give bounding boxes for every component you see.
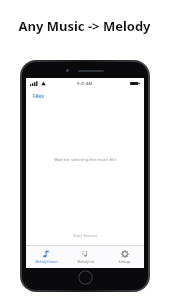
staticText: Files: [33, 93, 44, 100]
staticText: Melody List: [77, 260, 95, 264]
button[interactable]: Melody List: [66, 246, 105, 268]
button[interactable]: Melody Extract: [26, 246, 66, 268]
staticText: Melody Extract: [35, 260, 58, 264]
staticText: 9:41 AM: [77, 81, 93, 86]
staticText: Start Extract: [26, 233, 144, 239]
staticText: Wait for selecting the music file: [54, 157, 116, 163]
button[interactable]: Files: [26, 88, 144, 104]
staticText: Settings: [118, 260, 131, 264]
button[interactable]: Settings: [105, 246, 144, 268]
button[interactable]: Home: [78, 270, 93, 285]
staticText: Any Music -> Melody: [18, 17, 151, 35]
